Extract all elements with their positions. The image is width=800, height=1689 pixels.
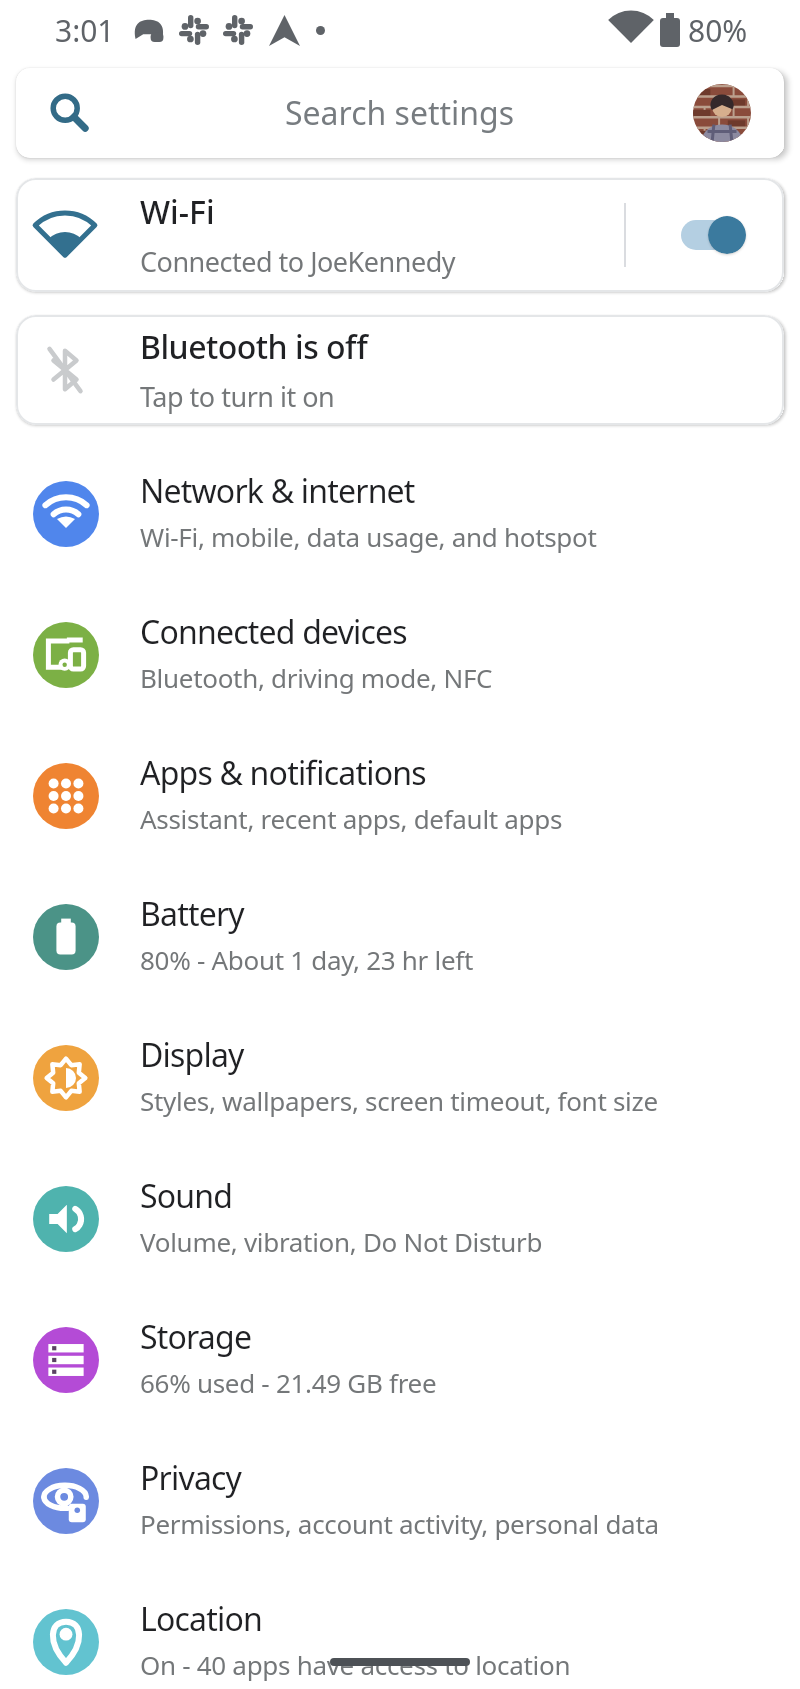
staticText: Privacy [140, 1456, 242, 1500]
button[interactable]: Connected devices [0, 584, 800, 725]
staticText: Assistant, recent apps, default apps [140, 801, 563, 836]
button[interactable]: Network & internet [0, 443, 800, 584]
staticText: Bluetooth is off [140, 325, 368, 369]
button[interactable]: Storage [0, 1289, 800, 1430]
staticText: Styles, wallpapers, screen timeout, font… [140, 1083, 658, 1118]
staticText: Network & internet [140, 469, 415, 513]
staticText: Volume, vibration, Do Not Disturb [140, 1224, 543, 1259]
button[interactable]: Display [0, 1007, 800, 1148]
staticText: Sound [140, 1174, 233, 1218]
button[interactable]: Sound [0, 1148, 800, 1289]
staticText: Search settings [285, 91, 515, 135]
staticText: Wi-Fi [140, 190, 215, 234]
button[interactable]: Location [0, 1571, 800, 1689]
staticText: Battery [140, 892, 244, 936]
staticText: Storage [140, 1315, 252, 1359]
staticText: Wi-Fi, mobile, data usage, and hotspot [140, 519, 597, 554]
staticText: 80% - About 1 day, 23 hr left [140, 942, 474, 977]
button[interactable]: Battery [0, 866, 800, 1007]
button[interactable]: Search settings [16, 68, 784, 158]
staticText: Display [140, 1033, 244, 1077]
staticText: Bluetooth, driving mode, NFC [140, 660, 493, 695]
button[interactable]: Wi-Fi [16, 178, 784, 292]
staticText: 3:01 [55, 10, 115, 51]
staticText: Connected devices [140, 610, 407, 654]
button[interactable] [680, 216, 746, 254]
button[interactable]: Bluetooth is off [16, 315, 784, 425]
staticText: Tap to turn it on [140, 378, 335, 415]
staticText: 66% used - 21.49 GB free [140, 1365, 437, 1400]
staticText: Apps & notifications [140, 751, 426, 795]
staticText: Permissions, account activity, personal … [140, 1506, 659, 1541]
button[interactable]: Privacy [0, 1430, 800, 1571]
button[interactable]: Apps & notifications [0, 725, 800, 866]
staticText: 80% [688, 10, 748, 51]
staticText: Connected to JoeKennedy [140, 243, 456, 280]
staticText: On - 40 apps have access to location [140, 1647, 571, 1682]
staticText: Location [140, 1597, 262, 1641]
